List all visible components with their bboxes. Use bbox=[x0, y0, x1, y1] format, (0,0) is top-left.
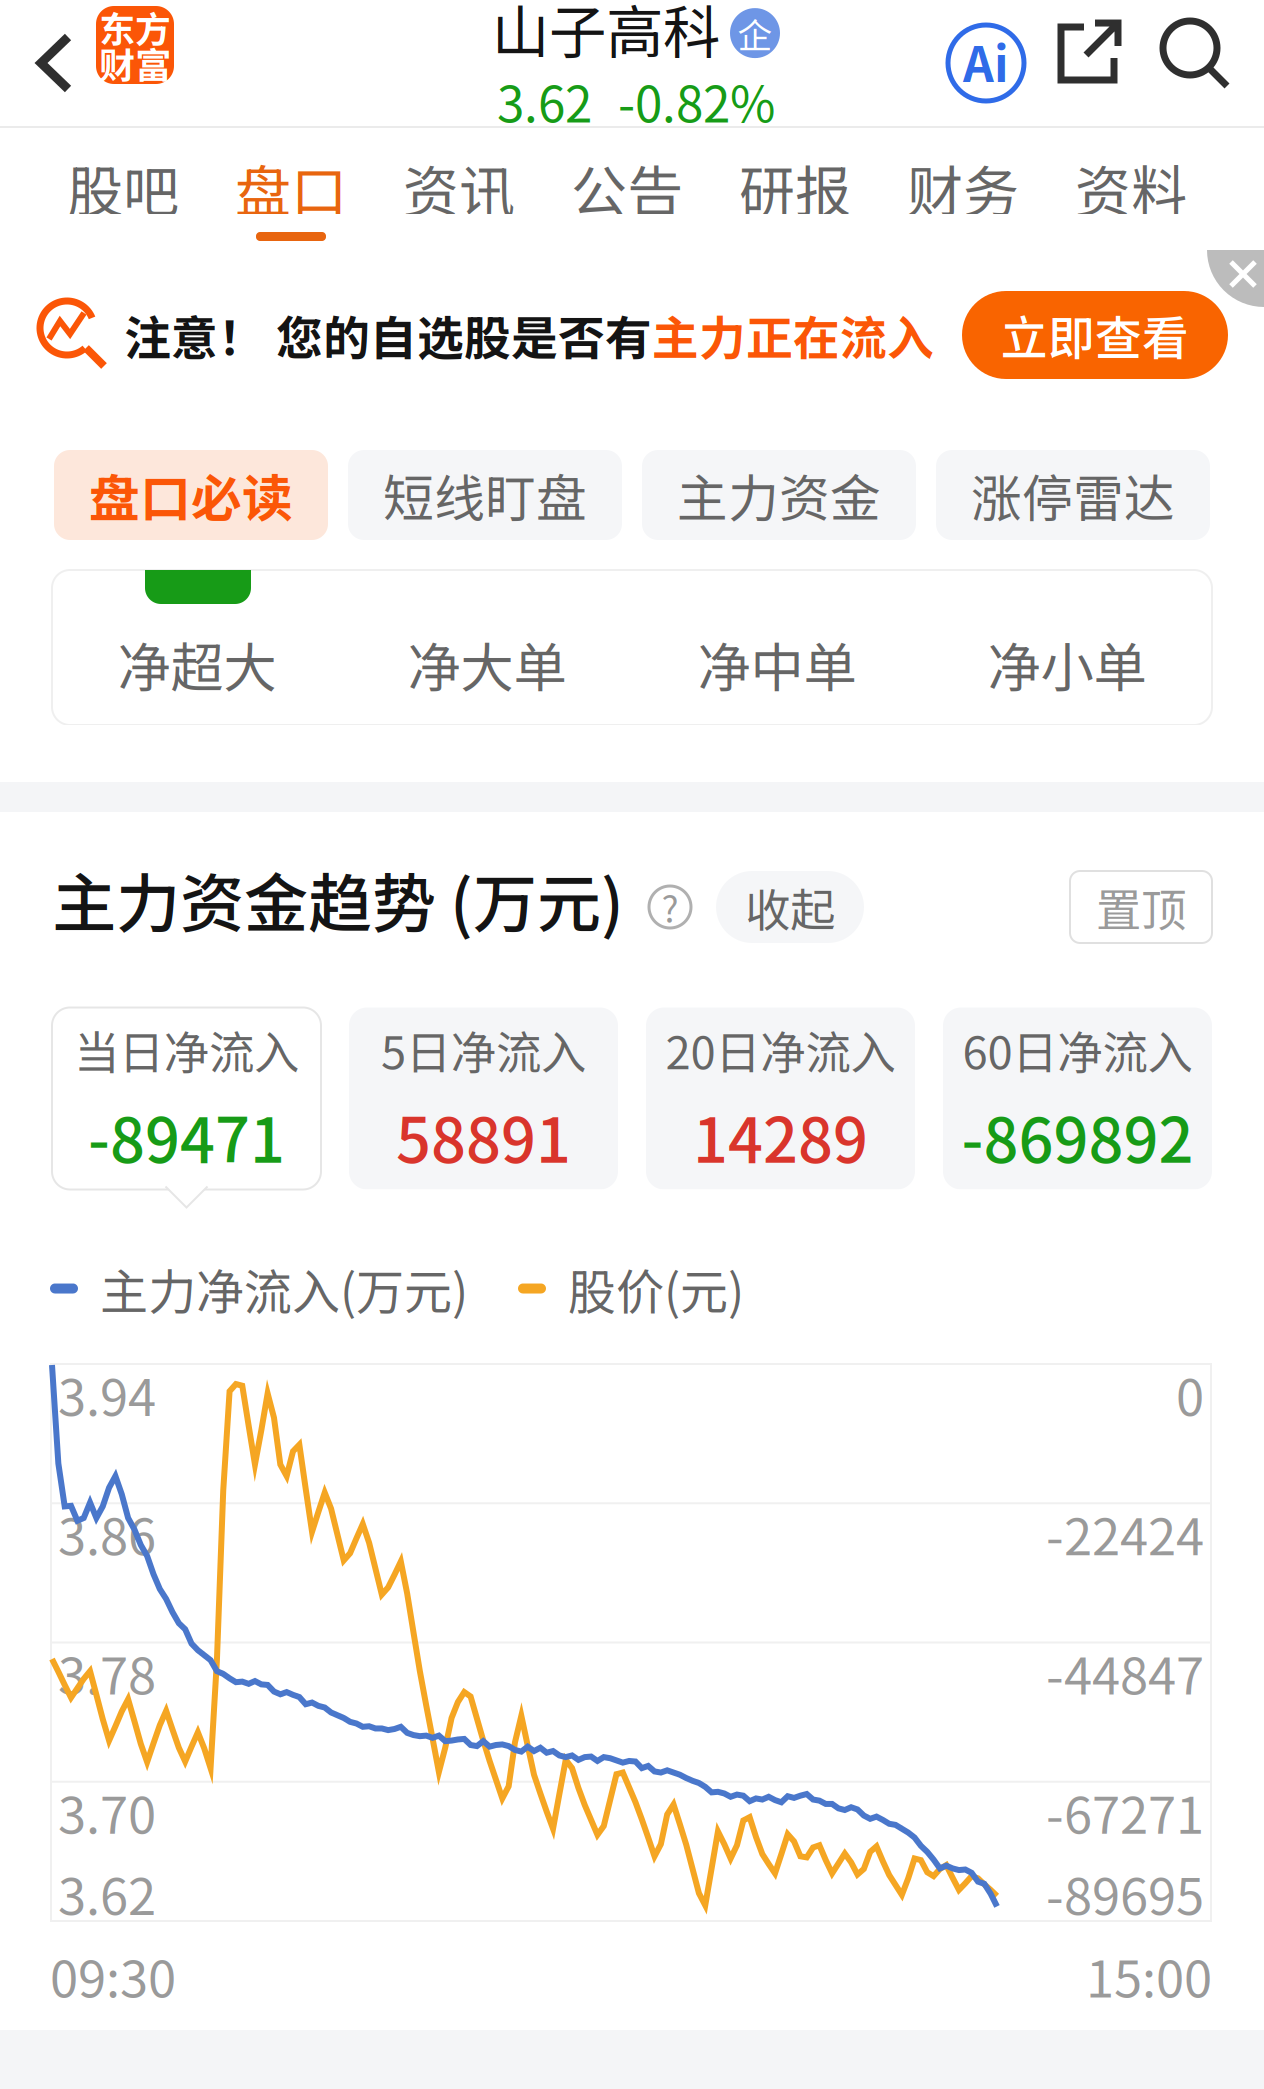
button[interactable]: 60日净流入 bbox=[943, 1007, 1212, 1211]
staticText: 0 bbox=[1176, 1357, 1204, 1431]
staticText: 14289 bbox=[693, 1091, 868, 1180]
button[interactable]: 资料 bbox=[1047, 128, 1215, 250]
staticText: 09:30 bbox=[50, 1939, 176, 2012]
button[interactable]: 5日净流入 bbox=[349, 1007, 618, 1211]
staticText: 股价(元) bbox=[546, 1254, 744, 1323]
button[interactable]: 财务 bbox=[879, 128, 1047, 250]
staticText: 3.94 bbox=[58, 1357, 156, 1431]
staticText: -89471 bbox=[88, 1091, 285, 1180]
button[interactable]: 说明 bbox=[624, 861, 716, 953]
staticText: 15:00 bbox=[1086, 1939, 1212, 2012]
staticText: 财务 bbox=[907, 147, 1019, 229]
staticText: 3.62 bbox=[497, 65, 592, 137]
staticText: -0.82% bbox=[618, 65, 775, 137]
button[interactable]: 分享 bbox=[1042, 0, 1146, 126]
staticText: 企 bbox=[737, 8, 772, 58]
button[interactable]: 立即查看 bbox=[962, 291, 1228, 379]
staticText: 3.86 bbox=[58, 1497, 156, 1570]
staticText: 3.70 bbox=[58, 1775, 156, 1848]
staticText: 当日净流入 bbox=[74, 1017, 299, 1082]
staticText: -22424 bbox=[1046, 1497, 1204, 1570]
button[interactable]: 返回 bbox=[22, 0, 96, 126]
button[interactable]: 股吧 bbox=[39, 128, 207, 250]
staticText: 立即查看 bbox=[1001, 301, 1189, 369]
staticText: 公告 bbox=[571, 147, 683, 229]
staticText: 20日净流入 bbox=[665, 1017, 895, 1082]
staticText: 5日净流入 bbox=[381, 1017, 586, 1082]
button[interactable]: 东方财富 bbox=[96, 0, 174, 126]
staticText: -44847 bbox=[1046, 1636, 1204, 1709]
staticText: 股吧 bbox=[67, 147, 179, 229]
staticText: 主力正在流入 bbox=[652, 301, 934, 369]
staticText: 短线盯盘 bbox=[383, 458, 587, 532]
staticText: 涨停雷达 bbox=[971, 458, 1175, 532]
staticText: -89695 bbox=[1046, 1856, 1204, 1930]
staticText: 财富 bbox=[99, 37, 171, 89]
button[interactable]: 当日净流入 bbox=[52, 1007, 321, 1211]
staticText: 盘口必读 bbox=[89, 458, 293, 532]
staticText: 资料 bbox=[1075, 147, 1187, 229]
staticText: 主力资金趋势 (万元) bbox=[52, 853, 624, 945]
staticText: Ai bbox=[963, 26, 1009, 96]
staticText: 净小单 bbox=[987, 625, 1146, 703]
staticText: 净超大 bbox=[117, 625, 276, 703]
button[interactable]: 短线盯盘 bbox=[348, 450, 622, 540]
button[interactable]: 盘口必读 bbox=[54, 450, 328, 540]
button[interactable]: 搜索 bbox=[1146, 0, 1246, 126]
staticText: -67271 bbox=[1046, 1775, 1204, 1848]
staticText: 60日净流入 bbox=[962, 1017, 1192, 1082]
staticText: 主力净流入(万元) bbox=[78, 1254, 468, 1323]
button[interactable]: 研报 bbox=[711, 128, 879, 250]
staticText: 净中单 bbox=[697, 625, 856, 703]
staticText: 注意！ 您的自选股是否有 bbox=[124, 301, 652, 369]
button[interactable]: AI bbox=[930, 0, 1042, 126]
staticText: -869892 bbox=[961, 1091, 1193, 1180]
staticText: 3.78 bbox=[58, 1636, 156, 1709]
button[interactable]: 盘口 bbox=[207, 128, 375, 250]
staticText: 盘口 bbox=[235, 147, 347, 229]
staticText: 净大单 bbox=[407, 625, 566, 703]
staticText: 置顶 bbox=[1096, 874, 1186, 940]
button[interactable]: 20日净流入 bbox=[646, 1007, 915, 1211]
staticText: 东方 bbox=[99, 1, 171, 53]
staticText: 收起 bbox=[745, 874, 835, 940]
staticText: 资讯 bbox=[403, 147, 515, 229]
staticText: 3.62 bbox=[58, 1856, 156, 1930]
button[interactable]: 主力资金 bbox=[642, 450, 916, 540]
button[interactable]: 收起 bbox=[716, 871, 864, 943]
button[interactable]: 资讯 bbox=[375, 128, 543, 250]
staticText: 58891 bbox=[396, 1091, 571, 1180]
button[interactable]: 关闭 bbox=[1208, 250, 1264, 307]
button[interactable]: 置顶 bbox=[1070, 871, 1212, 943]
button[interactable]: 涨停雷达 bbox=[936, 450, 1210, 540]
button[interactable]: 公告 bbox=[543, 128, 711, 250]
staticText: ? bbox=[661, 881, 678, 933]
staticText: 研报 bbox=[739, 147, 851, 229]
staticText: 主力资金 bbox=[677, 458, 881, 532]
staticText: 山子高科 bbox=[492, 0, 720, 69]
